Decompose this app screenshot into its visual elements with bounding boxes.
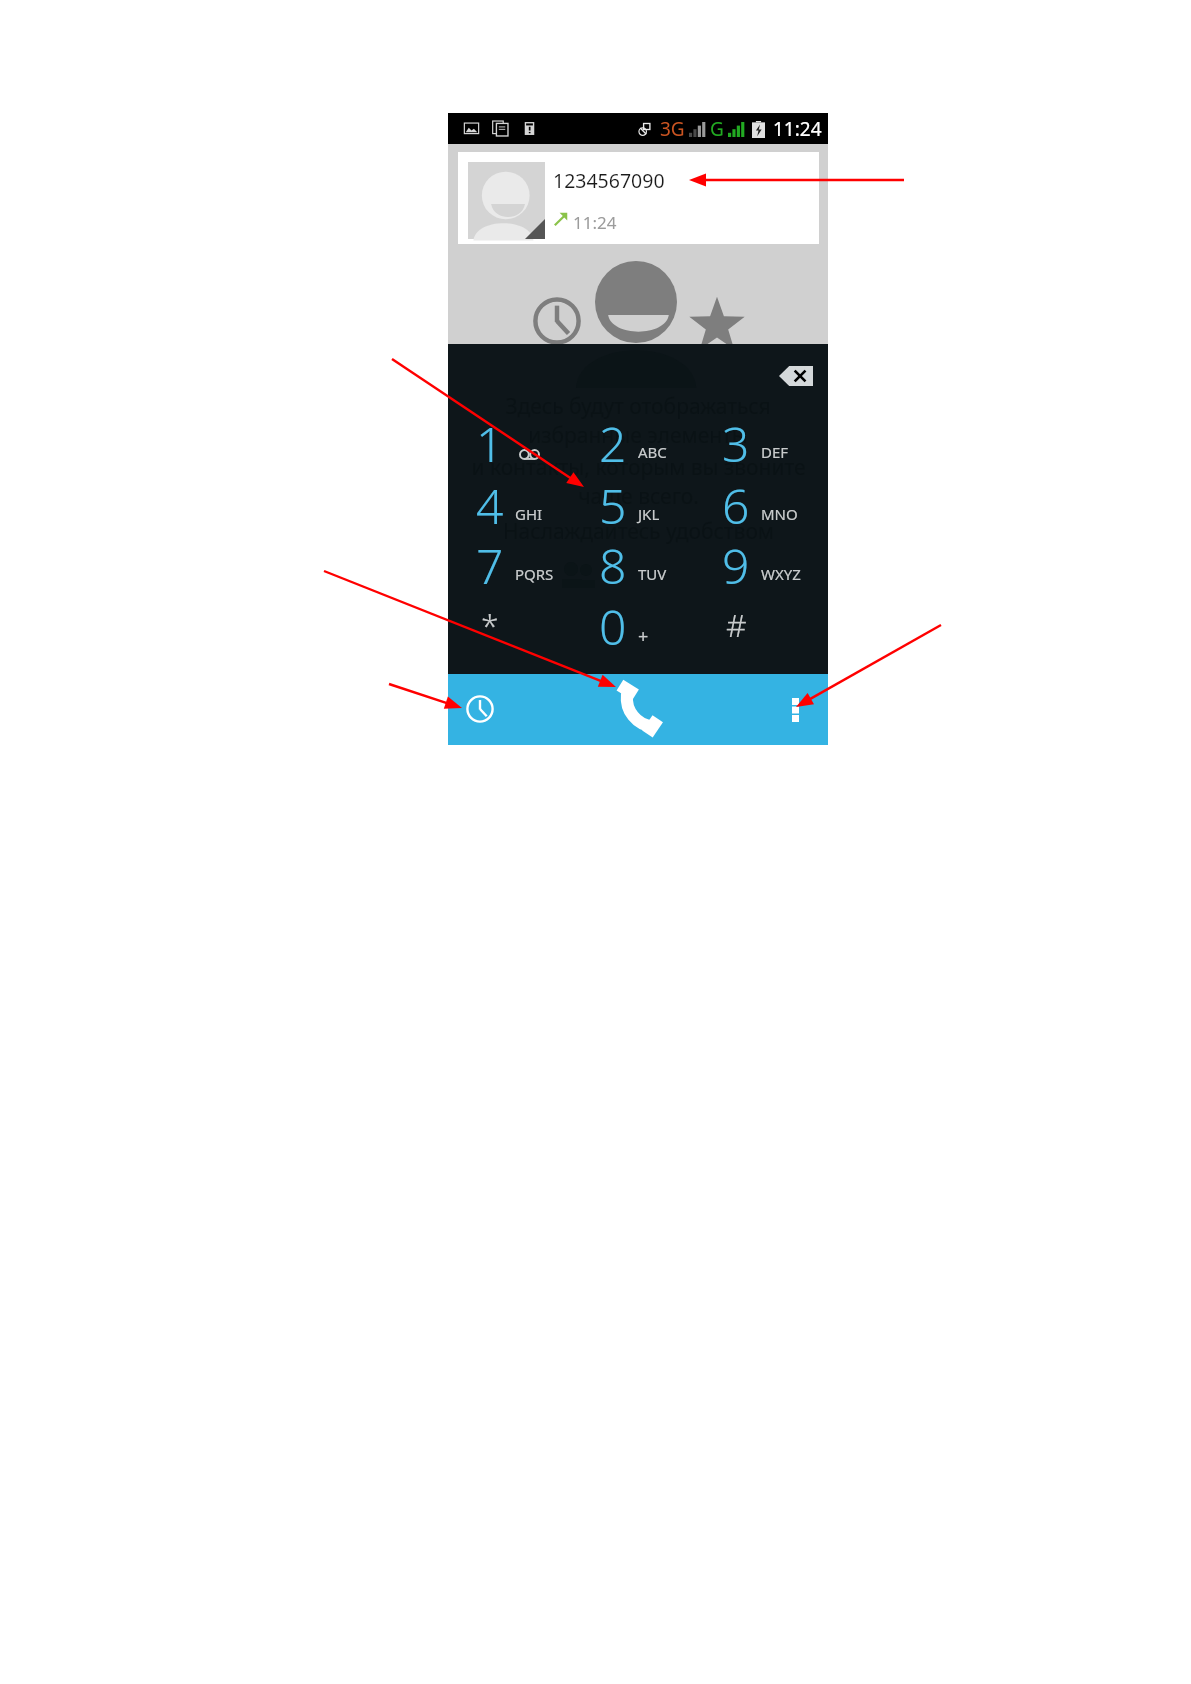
button[interactable]: 7 [449, 533, 572, 594]
staticText: 3G [660, 116, 685, 142]
staticText: G [710, 116, 724, 142]
button[interactable]: 4 [449, 473, 572, 534]
staticText: 1234567090 [553, 167, 665, 194]
staticText: WXYZ [761, 564, 801, 584]
staticText: JKL [638, 504, 660, 524]
button[interactable]: 3 [695, 411, 818, 472]
staticText: 3 [722, 411, 750, 472]
button[interactable]: Backspace [779, 366, 813, 386]
button[interactable]: More options [734, 674, 828, 745]
staticText: 9 [722, 533, 750, 594]
button[interactable]: 5 [572, 473, 695, 534]
staticText: 1 [476, 411, 504, 472]
button[interactable]: # [695, 594, 818, 655]
button[interactable]: 0 [572, 594, 695, 655]
staticText: * [481, 603, 499, 647]
button[interactable]: 1 [449, 411, 572, 472]
button[interactable]: Call [543, 674, 734, 745]
staticText: избранные элементы [528, 421, 748, 450]
staticText: + [638, 624, 649, 649]
staticText: # [726, 603, 747, 647]
staticText: 5 [599, 473, 627, 534]
staticText: PQRS [515, 564, 554, 584]
staticText: GHI [515, 504, 543, 524]
staticText: DEF [761, 442, 789, 462]
button[interactable]: 8 [572, 533, 695, 594]
staticText: TUV [638, 564, 667, 584]
staticText: 7 [476, 533, 504, 594]
staticText: 8 [599, 533, 627, 594]
button[interactable]: 2 [572, 411, 695, 472]
staticText: Наслаждайтесь удобством [503, 517, 774, 546]
button[interactable]: * [449, 594, 572, 655]
button[interactable]: 6 [695, 473, 818, 534]
staticText: ABC [638, 442, 667, 462]
staticText: 6 [722, 473, 750, 534]
staticText: 2 [599, 411, 627, 472]
staticText: 0 [599, 594, 627, 655]
staticText: MNO [761, 504, 798, 524]
staticText: чаще всего. [578, 482, 699, 511]
staticText: 11:24 [573, 211, 617, 234]
button[interactable]: 1234567090 [458, 152, 819, 244]
button[interactable]: Call history [448, 674, 543, 745]
staticText: 4 [476, 473, 504, 534]
staticText: и контакты, которым вы звоните [471, 453, 806, 482]
button[interactable]: 9 [695, 533, 818, 594]
staticText: 11:24 [773, 116, 822, 142]
